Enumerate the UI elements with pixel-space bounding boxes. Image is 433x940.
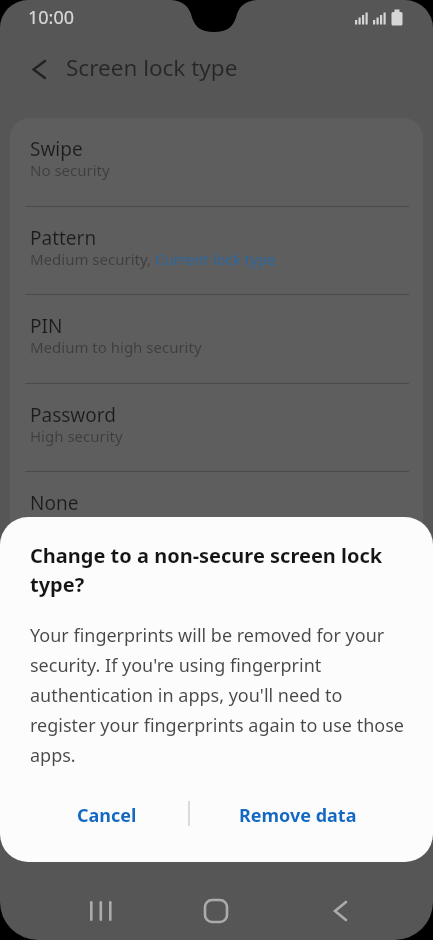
button[interactable] <box>192 887 240 935</box>
button[interactable]: Remove data <box>223 793 373 837</box>
staticText: Your fingerprints will be removed for yo… <box>30 623 404 767</box>
staticText: No security <box>30 160 110 180</box>
button[interactable]: PIN <box>10 295 423 384</box>
staticText: No security <box>30 514 110 534</box>
button[interactable] <box>16 46 60 90</box>
staticText: Swipe <box>30 136 83 162</box>
staticText: 10:00 <box>28 5 75 30</box>
staticText: Remove data <box>239 803 357 828</box>
staticText: Cancel <box>77 803 137 828</box>
button[interactable]: Swipe <box>10 118 423 207</box>
staticText: Change to a non-secure screen lock type? <box>30 542 383 598</box>
staticText: Screen lock type <box>66 52 238 83</box>
button[interactable] <box>316 887 364 935</box>
staticText: Password <box>30 402 116 428</box>
button[interactable]: Cancel <box>53 793 161 837</box>
staticText: Pattern <box>30 225 97 251</box>
button[interactable]: None <box>10 472 423 560</box>
staticText: Medium security, Current lock type <box>30 249 276 269</box>
staticText: High security <box>30 426 123 446</box>
button[interactable] <box>73 887 121 935</box>
staticText: Medium to high security <box>30 337 202 357</box>
button[interactable]: Pattern <box>10 207 423 295</box>
staticText: PIN <box>30 313 63 339</box>
button[interactable]: Password <box>10 384 423 472</box>
staticText: None <box>30 490 79 516</box>
